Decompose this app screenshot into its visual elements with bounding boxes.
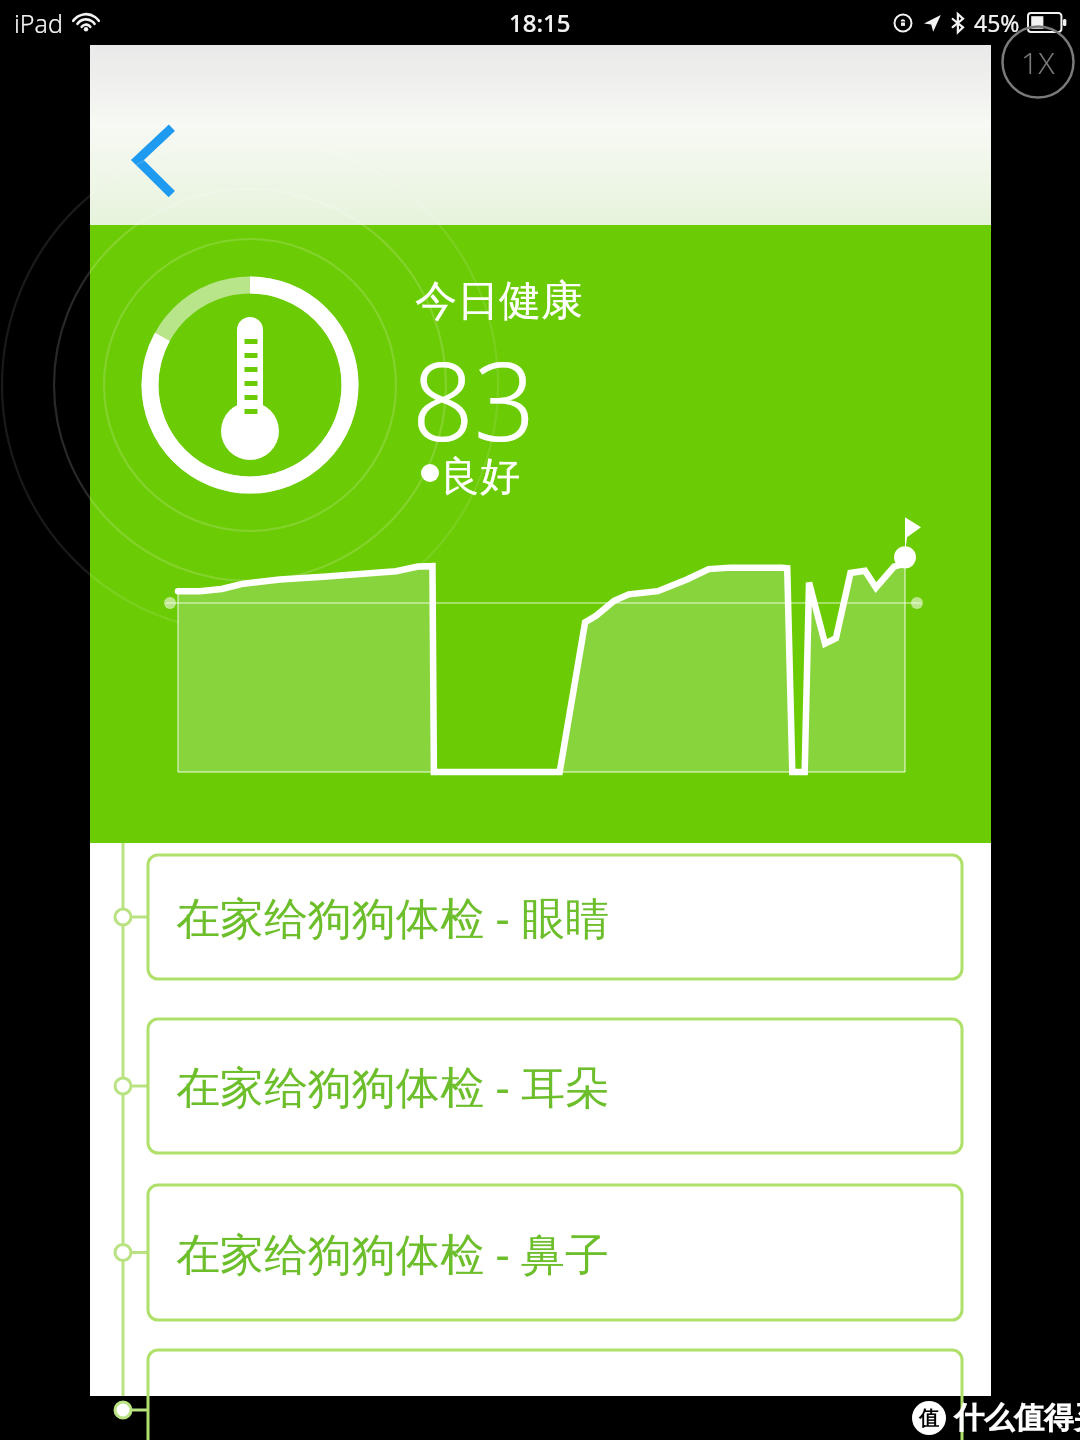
staticText: 在家给狗狗体检 - 鼻子 <box>176 1223 610 1283</box>
staticText: 值 <box>919 1406 939 1431</box>
button[interactable]: 在家给狗狗体检 - 鼻子 <box>148 1185 962 1320</box>
button[interactable] <box>148 1350 962 1440</box>
staticText: 今日健康 <box>415 275 583 328</box>
staticText: 18:15 <box>509 6 571 39</box>
staticText: 什么值得买 <box>954 1399 1080 1437</box>
button[interactable]: 在家给狗狗体检 - 眼睛 <box>148 855 962 979</box>
staticText: 1X <box>1021 42 1055 83</box>
staticText: 83 <box>412 326 536 473</box>
staticText: iPad <box>14 6 63 40</box>
staticText: 45% <box>974 7 1020 38</box>
button[interactable]: 在家给狗狗体检 - 耳朵 <box>148 1019 962 1153</box>
button[interactable]: Back <box>114 117 192 203</box>
staticText: 在家给狗狗体检 - 眼睛 <box>176 887 610 947</box>
staticText: 在家给狗狗体检 - 耳朵 <box>176 1056 610 1116</box>
staticText: 良好 <box>440 451 520 501</box>
button[interactable]: Zoom 1X <box>1001 25 1075 99</box>
